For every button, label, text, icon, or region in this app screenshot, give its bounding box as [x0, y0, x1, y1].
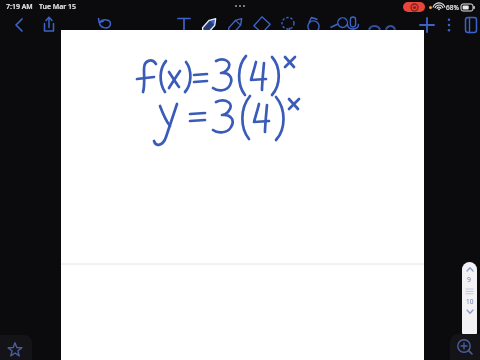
- button[interactable]: Lasso select: [275, 12, 301, 38]
- button[interactable]: Magnifier tool: [327, 12, 353, 38]
- button[interactable]: Back: [6, 12, 32, 38]
- button[interactable]: Undo: [92, 12, 118, 38]
- button[interactable]: Page navigation: [462, 262, 477, 340]
- button[interactable]: Shapes tool: [301, 12, 327, 38]
- button[interactable]: Zoom: [450, 334, 480, 360]
- button[interactable]: Highlighter tool: [223, 12, 249, 38]
- button[interactable]: Pen tool, selected: [197, 12, 223, 38]
- button[interactable]: More options: [440, 12, 458, 38]
- button[interactable]: [61, 30, 424, 360]
- staticText: 7:19 AM: [6, 2, 33, 12]
- button[interactable]: Text tool: [171, 12, 197, 38]
- button[interactable]: Share: [36, 12, 62, 38]
- staticText: Tue Mar 15: [39, 2, 77, 12]
- button[interactable]: Record audio: [340, 12, 366, 38]
- staticText: 10: [466, 297, 474, 306]
- button[interactable]: Eraser tool: [249, 12, 275, 38]
- staticText: 9: [467, 275, 472, 285]
- button[interactable]: Add: [414, 12, 440, 38]
- button[interactable]: Favorites: [0, 335, 32, 360]
- button[interactable]: Pages: [458, 12, 480, 38]
- staticText: 68%: [446, 3, 459, 12]
